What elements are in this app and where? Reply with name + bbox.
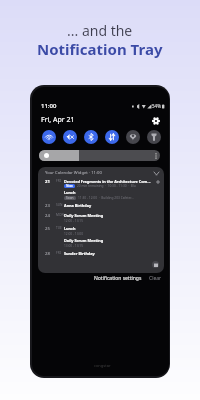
button[interactable]: Flashlight	[147, 130, 161, 144]
button[interactable]: Mute	[63, 130, 77, 144]
staticText: TUE	[56, 226, 62, 230]
button[interactable]: Clear	[149, 275, 162, 282]
staticText: Fri, Apr 21	[41, 115, 75, 125]
staticText: congstar	[94, 363, 111, 368]
button[interactable]: Wi-Fi	[42, 130, 56, 144]
staticText: Your Calendar Widget · 11:00	[45, 170, 102, 176]
staticText: 25	[45, 226, 50, 232]
staticText: 21	[45, 179, 50, 185]
staticText: FRI	[56, 251, 61, 255]
staticText: 13:00 - 13:15	[64, 244, 83, 248]
staticText: MON	[56, 213, 64, 217]
button[interactable]: Your Calendar Widget · 11:00	[38, 167, 164, 273]
staticText: 20 min remaining · 10:30 - 11:30 · Blu	[77, 184, 136, 188]
staticText: Anna Birthday	[64, 203, 92, 208]
staticText: Devoted Fragments in the Architecture Co…	[64, 179, 156, 184]
staticText: 54%	[152, 103, 161, 109]
staticText: 11:30 - 12:00 · Building 203 Cafeter...	[78, 196, 134, 200]
staticText: Daily Scrum Meeting	[64, 213, 104, 218]
button[interactable]: Notification settings	[94, 275, 142, 282]
staticText: Sunder Birthday	[64, 251, 95, 256]
button[interactable]: Settings	[150, 115, 162, 127]
button[interactable]: Mobile data	[105, 130, 119, 144]
staticText: 24	[45, 213, 50, 219]
staticText: 28	[45, 251, 50, 257]
staticText: Notification Tray	[37, 39, 163, 59]
button[interactable]: Bluetooth	[84, 130, 98, 144]
staticText: Now	[66, 184, 73, 188]
staticText: Daily Scrum Meeting	[64, 238, 104, 243]
staticText: 12:00 - 13:00	[64, 232, 83, 236]
button[interactable]: Location	[126, 130, 140, 144]
staticText: ... and the	[67, 21, 133, 40]
staticText: FRI	[56, 179, 61, 183]
staticText: Soon	[66, 196, 74, 200]
staticText: 23	[45, 203, 50, 209]
button[interactable]: Brightness	[39, 150, 160, 161]
staticText: 11:00	[41, 102, 57, 110]
staticText: Lunch	[64, 190, 76, 195]
staticText: SUN	[56, 203, 63, 207]
staticText: Lunch	[64, 226, 76, 231]
staticText: 12:00 - 13:15	[64, 219, 83, 223]
